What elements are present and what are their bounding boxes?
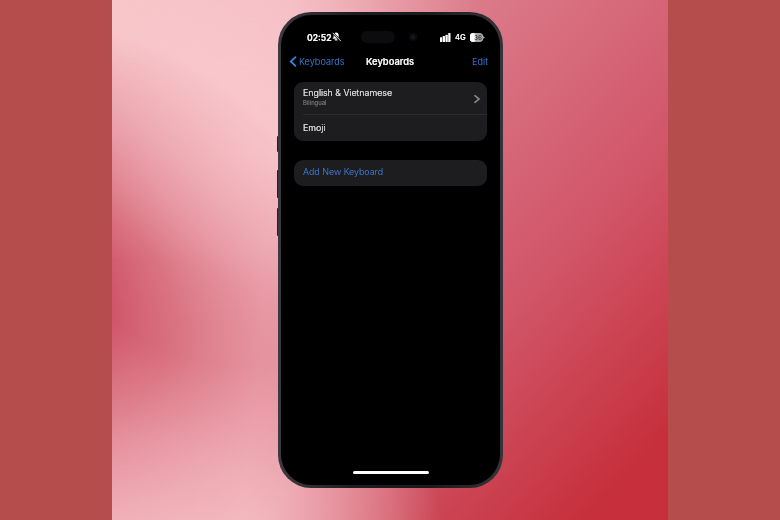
staticText: Bilingual bbox=[303, 99, 327, 106]
staticText: Add New Keyboard bbox=[303, 166, 383, 177]
staticText: Emoji bbox=[303, 122, 326, 133]
button[interactable]: Emoji bbox=[294, 115, 487, 141]
staticText: Keyboards bbox=[366, 56, 415, 67]
staticText: 36 bbox=[474, 34, 483, 42]
button[interactable]: English & Vietnamese bbox=[294, 82, 487, 114]
button[interactable]: Add New Keyboard bbox=[294, 160, 487, 186]
button[interactable]: Keyboards bbox=[281, 53, 351, 70]
staticText: 02:52 bbox=[307, 33, 332, 43]
staticText: Keyboards bbox=[299, 56, 345, 67]
staticText: English & Vietnamese bbox=[303, 87, 393, 98]
staticText: 4G bbox=[455, 33, 466, 42]
button[interactable]: Edit bbox=[460, 52, 500, 71]
